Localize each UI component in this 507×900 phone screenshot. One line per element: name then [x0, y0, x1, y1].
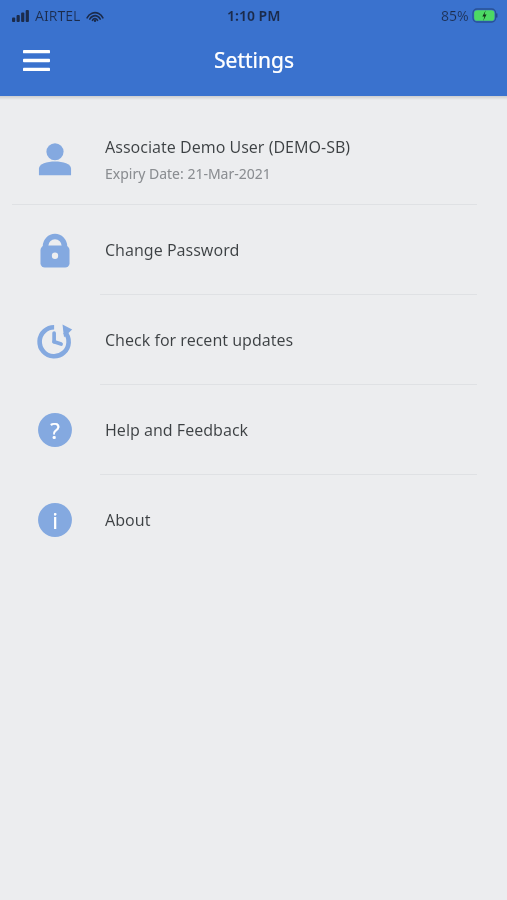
staticText: Check for recent updates [105, 329, 294, 351]
staticText: Expiry Date: 21-Mar-2021 [105, 164, 271, 183]
staticText: Help and Feedback [105, 419, 249, 441]
button[interactable]: Associate Demo User (DEMO-SB) [0, 114, 507, 204]
button[interactable]: Check for recent updates [0, 295, 507, 384]
button[interactable]: Change Password [0, 205, 507, 294]
staticText: 85% [441, 6, 469, 25]
staticText: i [52, 505, 58, 535]
staticText: About [105, 509, 151, 531]
staticText: ? [50, 415, 60, 445]
button[interactable]: i [0, 475, 507, 564]
button[interactable]: ? [0, 385, 507, 474]
staticText: Change Password [105, 239, 240, 261]
staticText: AIRTEL [35, 6, 81, 25]
staticText: Settings [214, 46, 294, 75]
staticText: Associate Demo User (DEMO-SB) [105, 136, 351, 158]
button[interactable]: Open navigation menu [10, 34, 62, 86]
staticText: 1:10 PM [227, 6, 281, 25]
